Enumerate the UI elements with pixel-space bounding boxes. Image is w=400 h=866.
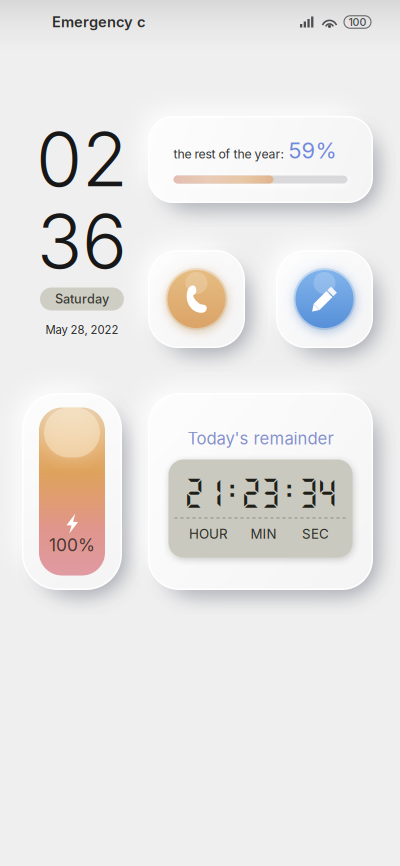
staticText: HOUR bbox=[189, 526, 228, 542]
staticText: Today's remainder bbox=[187, 428, 333, 449]
staticText: SEC bbox=[302, 526, 329, 542]
staticText: Saturday bbox=[55, 291, 109, 307]
staticText: May 28, 2022 bbox=[45, 323, 118, 337]
staticText: 21:23:34 bbox=[183, 474, 338, 510]
button[interactable]: Notes bbox=[276, 250, 373, 348]
staticText: 100 bbox=[348, 15, 366, 28]
staticText: the rest of the year: bbox=[173, 147, 284, 161]
staticText: 02 bbox=[36, 114, 128, 204]
staticText: MIN bbox=[250, 526, 276, 542]
button[interactable]: Phone bbox=[148, 250, 245, 348]
staticText: 36 bbox=[37, 196, 127, 286]
staticText: Emergency c bbox=[52, 13, 146, 31]
staticText: 59% bbox=[288, 137, 336, 164]
staticText: 100% bbox=[49, 534, 95, 555]
